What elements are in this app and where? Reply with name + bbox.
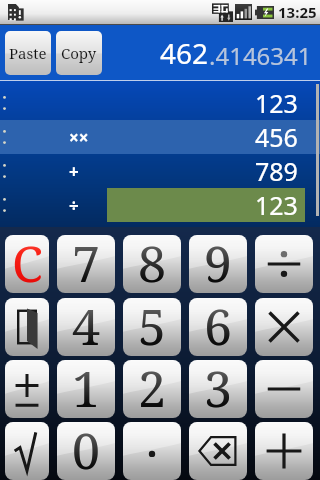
button[interactable]: ×× — [0, 120, 320, 154]
staticText: .4146341 — [209, 39, 312, 72]
button[interactable]: 4 — [57, 298, 115, 356]
staticText: 9 — [204, 235, 232, 287]
staticText: C — [12, 235, 43, 287]
staticText: 7 — [72, 235, 100, 287]
button[interactable]: Backspace — [189, 422, 247, 480]
button[interactable]: ÷ — [0, 188, 320, 222]
button[interactable]: Copy — [56, 31, 102, 75]
button[interactable]: Divide — [255, 235, 313, 293]
staticText: 789 — [255, 154, 298, 188]
staticText: ÷ — [69, 194, 79, 217]
staticText: 123 — [255, 86, 298, 120]
button[interactable]: C — [5, 235, 49, 293]
button[interactable]: Plus — [255, 422, 313, 480]
staticText: Paste — [9, 43, 47, 63]
button[interactable]: 3 — [189, 360, 247, 418]
button[interactable]: 9 — [189, 235, 247, 293]
staticText: 462 — [160, 34, 209, 72]
staticText: 4 — [72, 298, 100, 350]
button[interactable]: Exit — [5, 298, 49, 356]
button[interactable]: 8 — [123, 235, 181, 293]
button[interactable]: Multiply — [255, 298, 313, 356]
button[interactable]: 6 — [189, 298, 247, 356]
staticText: 5 — [138, 298, 166, 350]
staticText: 13:25 — [278, 2, 317, 22]
staticText: 8 — [138, 235, 166, 287]
staticText: 123 — [255, 188, 298, 222]
button[interactable]: 1 — [57, 360, 115, 418]
staticText: + — [69, 160, 79, 183]
staticText: ×× — [69, 126, 89, 149]
staticText: 456 — [255, 120, 298, 154]
button[interactable]: Plus minus — [5, 360, 49, 418]
staticText: Copy — [61, 43, 97, 63]
button[interactable]: Square root — [5, 422, 49, 480]
button[interactable]: Paste — [5, 31, 51, 75]
button[interactable]: 5 — [123, 298, 181, 356]
button[interactable]: 0 — [57, 422, 115, 480]
staticText: 0 — [72, 422, 100, 474]
button[interactable]: 123 — [0, 81, 320, 120]
staticText: 2 — [138, 360, 166, 412]
button[interactable]: Decimal point — [123, 422, 181, 480]
staticText: 1 — [72, 360, 100, 412]
staticText: 3 — [204, 360, 232, 412]
button[interactable]: 2 — [123, 360, 181, 418]
staticText: 6 — [204, 298, 232, 350]
button[interactable]: Minus — [255, 360, 313, 418]
button[interactable]: 7 — [57, 235, 115, 293]
button[interactable]: + — [0, 154, 320, 188]
